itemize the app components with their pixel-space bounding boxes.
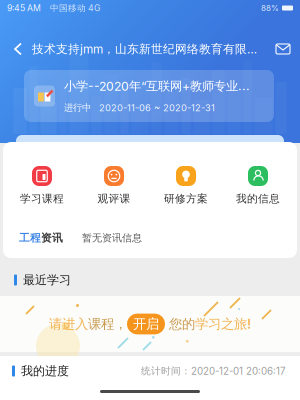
staticText: 进行中	[64, 102, 91, 114]
staticText: 2020-11-06 ~ 2020-12-31	[99, 102, 215, 113]
staticText: 88%	[261, 3, 279, 13]
staticText: 学习课程	[20, 192, 64, 205]
staticText: 统计时间：2020-12-01 20:06:17	[141, 365, 286, 377]
staticText: 暂无资讯信息	[82, 232, 142, 244]
staticText: !	[247, 316, 251, 332]
staticText: 我的进度	[21, 363, 69, 378]
button[interactable]: 观评课	[78, 166, 150, 205]
button[interactable]: 返回	[5, 36, 31, 62]
button[interactable]: 消息	[270, 36, 296, 62]
button[interactable]: 工程	[3, 225, 297, 251]
staticText: 9:45 AM	[7, 3, 41, 13]
button[interactable]: 学习课程	[6, 166, 78, 205]
staticText: 研修方案	[164, 192, 208, 205]
staticText: 技术支持jmm，山东新世纪网络教育有限…	[32, 42, 257, 56]
staticText: 资讯	[41, 231, 63, 245]
staticText: 我的信息	[236, 192, 280, 205]
button[interactable]: 请进入	[0, 296, 300, 352]
staticText: 最近学习	[23, 272, 71, 287]
staticText: 中国移动 4G	[41, 2, 100, 13]
staticText: 观评课	[97, 192, 130, 205]
staticText: 课程，	[88, 316, 127, 332]
staticText: 工程	[19, 231, 41, 245]
button[interactable]: 研修方案	[150, 166, 222, 205]
staticText: 开启	[133, 316, 159, 332]
button[interactable]: 我的信息	[222, 166, 294, 205]
staticText: 您的	[165, 316, 195, 332]
button[interactable]: 小学--2020年“互联网+教师专业发…	[24, 70, 274, 122]
staticText: 请进入	[49, 316, 88, 332]
staticText: 小学--2020年“互联网+教师专业发…	[64, 78, 257, 94]
staticText: 学习之旅	[195, 316, 247, 332]
